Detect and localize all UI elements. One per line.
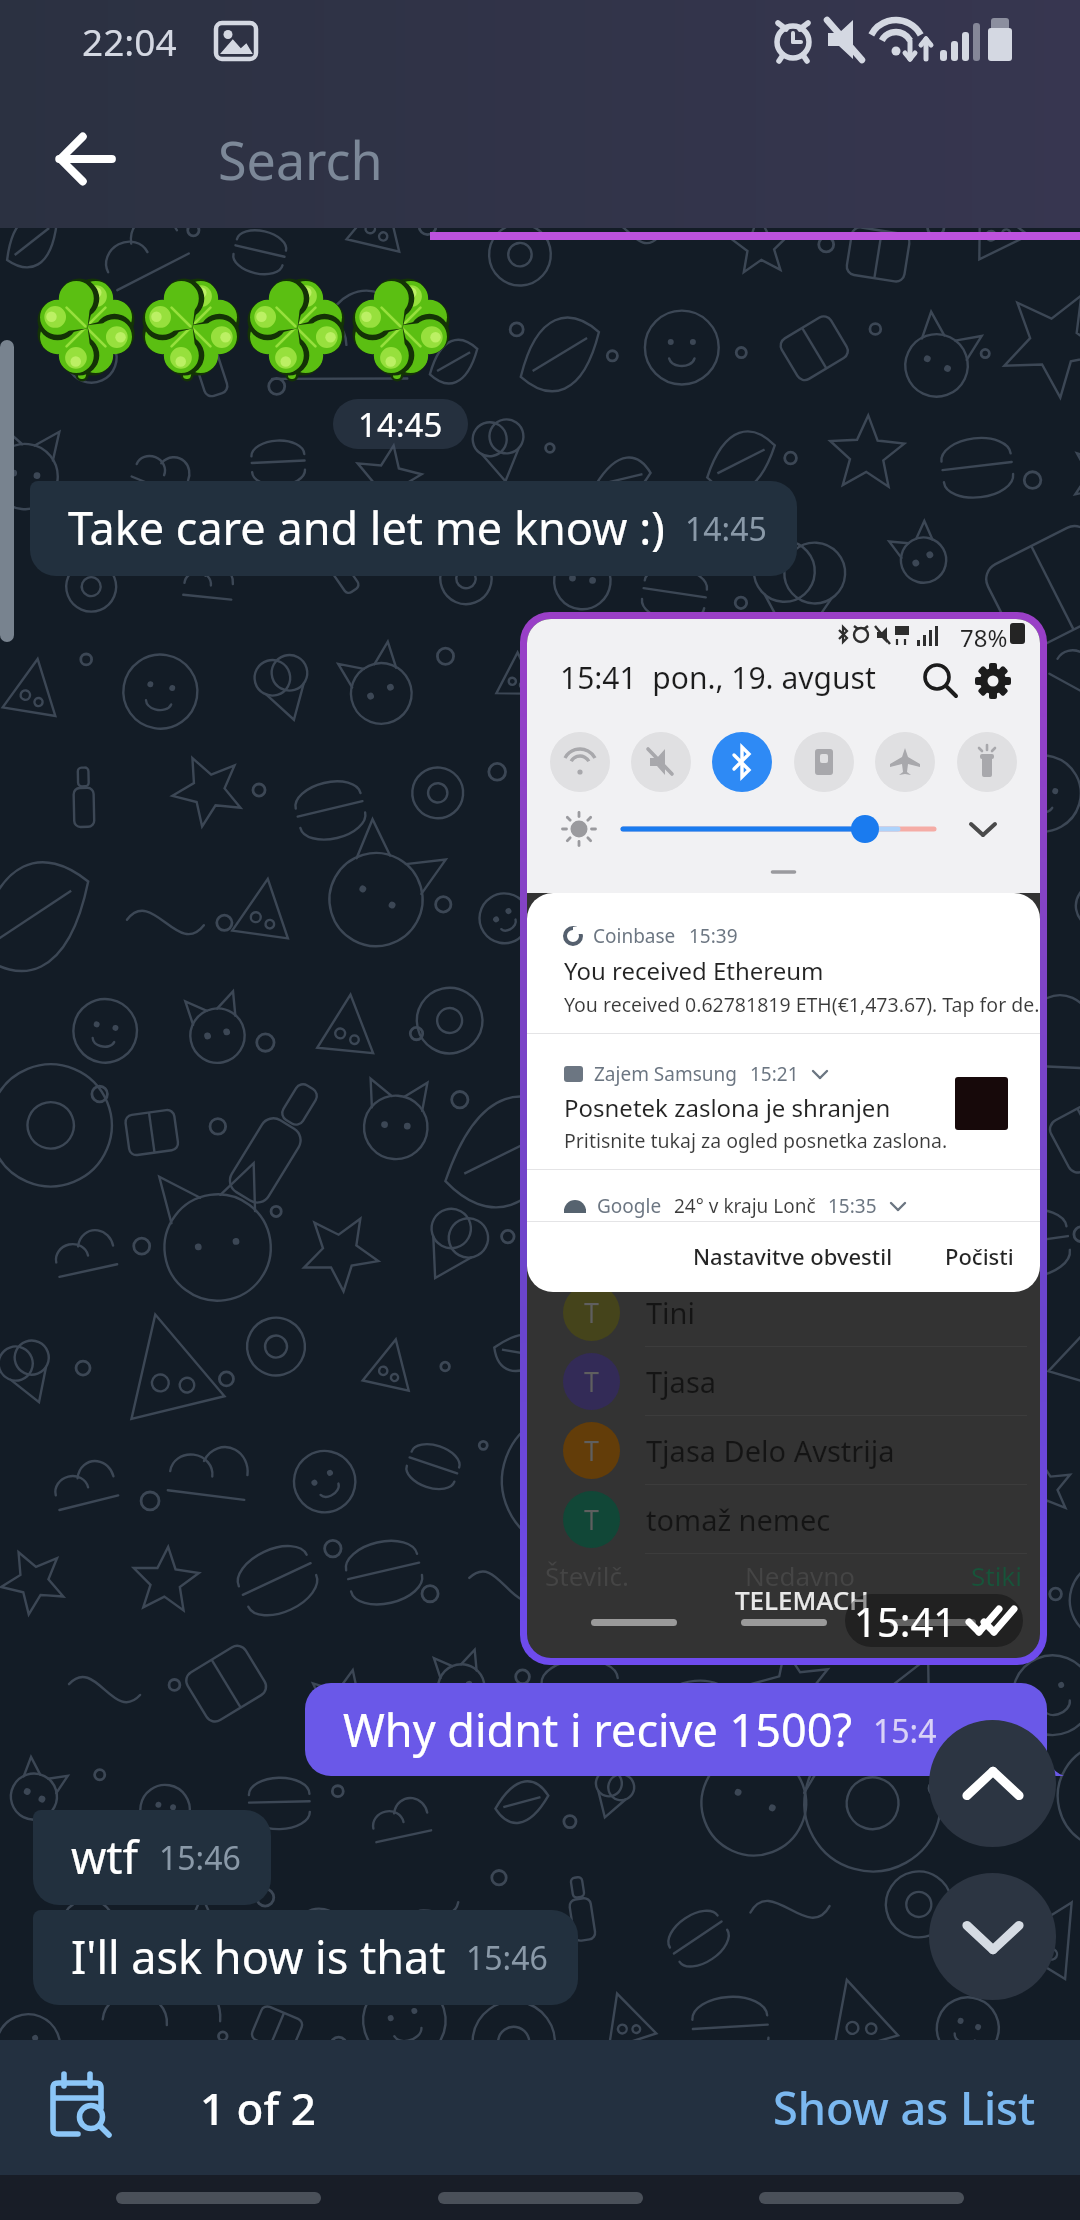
staticText: Google [597, 1193, 662, 1219]
staticText: Posnetek zaslona je shranjen [564, 1091, 891, 1124]
staticText: Nastavitve obvestil [693, 1241, 893, 1271]
button[interactable]: wtf [33, 1810, 271, 1905]
staticText: Coinbase [593, 923, 676, 949]
button[interactable]: Search [170, 90, 1080, 228]
staticText: You received Ethereum [564, 954, 824, 987]
staticText: 14:45 [685, 507, 767, 551]
staticText: Počisti [945, 1241, 1014, 1271]
staticText: Stiki [971, 1558, 1022, 1593]
staticText: Pritisnite tukaj za ogled posnetka zaslo… [564, 1127, 948, 1154]
staticText: 1 of 2 [200, 2078, 316, 2138]
staticText: Show as List [773, 2077, 1036, 2138]
staticText: Take care and let me know :) [68, 497, 665, 558]
staticText: Tjasa [646, 1362, 717, 1401]
button[interactable]: Why didnt i recive 1500? [305, 1683, 1047, 1776]
button[interactable]: I'll ask how is that [33, 1910, 578, 2005]
staticText: 78% [960, 621, 1008, 654]
staticText: Tjasa Delo Avstrija [646, 1431, 895, 1470]
button[interactable]: Show as List [729, 2055, 1080, 2160]
staticText: 15:4 [873, 1709, 937, 1753]
staticText: I'll ask how is that [71, 1926, 446, 1987]
staticText: Nedavno [745, 1558, 856, 1593]
staticText: 15:39 [689, 923, 738, 949]
staticText: Search [218, 124, 383, 195]
staticText: 15:46 [159, 1836, 241, 1880]
staticText: tomaž nemec [646, 1500, 831, 1539]
staticText: T [584, 1363, 600, 1400]
staticText: Zajem Samsung [594, 1061, 737, 1087]
staticText: 15:41 [854, 1594, 957, 1647]
staticText: 15:41 pon., 19. avgust [560, 657, 876, 698]
staticText: wtf [71, 1826, 139, 1887]
button[interactable]: T [527, 619, 1040, 1658]
staticText: Tini [646, 1293, 696, 1332]
staticText: Why didnt i recive 1500? [343, 1699, 853, 1760]
staticText: 15:21 [750, 1061, 799, 1087]
button[interactable]: Previous result [929, 1720, 1056, 1847]
staticText: 15:35 [828, 1193, 877, 1219]
staticText: T [584, 1501, 600, 1538]
staticText: You received 0.62781819 ETH(€1,473.67). … [564, 991, 1040, 1018]
staticText: T [584, 1432, 600, 1469]
button[interactable]: Search by date [20, 2040, 144, 2175]
staticText: 22:04 [82, 16, 177, 66]
button[interactable]: Next result [929, 1873, 1056, 2000]
button[interactable]: Take care and let me know :) [30, 481, 797, 576]
staticText: 14:45 [358, 402, 443, 447]
staticText: 24° v kraju Lonč [674, 1193, 816, 1219]
staticText: Številč. [545, 1558, 629, 1593]
button[interactable]: Back [0, 90, 170, 228]
staticText: TELEMACH [735, 1582, 869, 1617]
staticText: 15:46 [466, 1936, 548, 1980]
staticText: T [584, 1294, 600, 1331]
